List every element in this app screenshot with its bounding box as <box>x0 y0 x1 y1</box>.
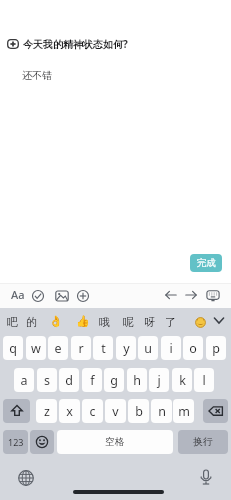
button[interactable]: 完成 <box>190 254 222 272</box>
button[interactable]: 的 <box>22 314 40 329</box>
staticText: r <box>78 340 84 357</box>
button[interactable]: q <box>3 336 23 360</box>
staticText: y <box>123 340 130 357</box>
staticText: z <box>44 403 50 420</box>
button[interactable]: 换行 <box>178 430 228 454</box>
staticText: d <box>65 372 73 389</box>
staticText: 哦 <box>99 315 110 329</box>
button[interactable]: y <box>116 336 136 360</box>
staticText: l <box>202 372 206 389</box>
staticText: v <box>112 403 119 420</box>
staticText: k <box>179 372 186 389</box>
button[interactable]: Insert photo <box>53 287 71 305</box>
staticText: q <box>9 340 17 357</box>
button[interactable]: o <box>183 336 203 360</box>
button[interactable]: v <box>105 399 126 423</box>
staticText: x <box>66 403 73 420</box>
staticText: g <box>110 372 118 389</box>
button[interactable]: 👍 <box>74 314 92 329</box>
button[interactable]: Smiley emoji <box>195 317 206 328</box>
button[interactable]: l <box>194 368 214 392</box>
button[interactable]: Add attachment <box>74 287 92 305</box>
button[interactable]: r <box>71 336 91 360</box>
button[interactable]: s <box>37 368 57 392</box>
button[interactable]: Numbers <box>3 430 28 454</box>
staticText: 今天我的精神状态如何? <box>23 37 128 51</box>
button[interactable]: 吧 <box>3 314 21 329</box>
button[interactable]: 哦 <box>95 314 113 329</box>
button[interactable]: Shift <box>3 399 30 423</box>
staticText: 👌 <box>49 315 63 328</box>
staticText: h <box>133 372 141 389</box>
button[interactable]: Checklist <box>29 287 47 305</box>
staticText: n <box>158 403 166 420</box>
staticText: u <box>144 340 152 357</box>
button[interactable]: k <box>172 368 192 392</box>
button[interactable]: 呀 <box>140 314 158 329</box>
button[interactable]: h <box>127 368 147 392</box>
staticText: 完成 <box>197 257 216 269</box>
button[interactable]: a <box>14 368 34 392</box>
staticText: e <box>54 340 62 357</box>
button[interactable]: z <box>36 399 57 423</box>
button[interactable]: 👌 <box>47 314 65 329</box>
staticText: w <box>31 340 41 357</box>
button[interactable]: Voice input <box>198 469 214 485</box>
button[interactable]: Hide keyboard <box>204 286 222 304</box>
staticText: 还不错 <box>22 69 52 82</box>
button[interactable]: Text format <box>8 285 28 303</box>
button[interactable]: Emoji <box>30 430 54 454</box>
staticText: p <box>212 340 220 357</box>
button[interactable]: Switch language <box>18 470 34 486</box>
staticText: 的 <box>26 315 37 329</box>
staticText: 空格 <box>105 436 125 448</box>
staticText: i <box>169 340 173 357</box>
staticText: 呢 <box>123 315 134 329</box>
staticText: m <box>178 403 190 420</box>
button[interactable]: 空格 <box>57 430 173 454</box>
staticText: 123 <box>8 436 24 448</box>
button[interactable]: u <box>138 336 158 360</box>
staticText: t <box>101 340 106 357</box>
staticText: 👍 <box>76 315 90 328</box>
staticText: f <box>90 372 95 389</box>
staticText: 呀 <box>144 315 155 329</box>
button[interactable]: d <box>59 368 79 392</box>
staticText: 吧 <box>7 315 18 329</box>
staticText: Aa <box>11 287 25 302</box>
button[interactable]: i <box>161 336 181 360</box>
button[interactable]: t <box>93 336 113 360</box>
button[interactable]: More candidates <box>211 311 227 326</box>
button[interactable]: AI assist <box>7 39 19 49</box>
staticText: 换行 <box>193 436 213 448</box>
button[interactable]: b <box>128 399 149 423</box>
button[interactable]: p <box>206 336 226 360</box>
staticText: s <box>44 372 50 389</box>
staticText: c <box>89 403 96 420</box>
staticText: 了 <box>165 315 176 329</box>
button[interactable]: 了 <box>161 314 179 329</box>
staticText: b <box>135 403 143 420</box>
staticText: o <box>189 340 197 357</box>
button[interactable]: m <box>173 399 194 423</box>
button[interactable]: e <box>48 336 68 360</box>
staticText: j <box>157 372 161 389</box>
button[interactable]: j <box>149 368 169 392</box>
button[interactable]: Undo <box>162 286 180 304</box>
button[interactable]: n <box>151 399 172 423</box>
button[interactable]: c <box>82 399 103 423</box>
button[interactable]: w <box>26 336 46 360</box>
staticText: a <box>20 372 28 389</box>
button[interactable]: Redo <box>182 286 200 304</box>
button[interactable]: 呢 <box>119 314 137 329</box>
button[interactable]: x <box>59 399 80 423</box>
button[interactable]: Backspace <box>203 399 228 423</box>
button[interactable]: g <box>104 368 124 392</box>
button[interactable]: f <box>82 368 102 392</box>
